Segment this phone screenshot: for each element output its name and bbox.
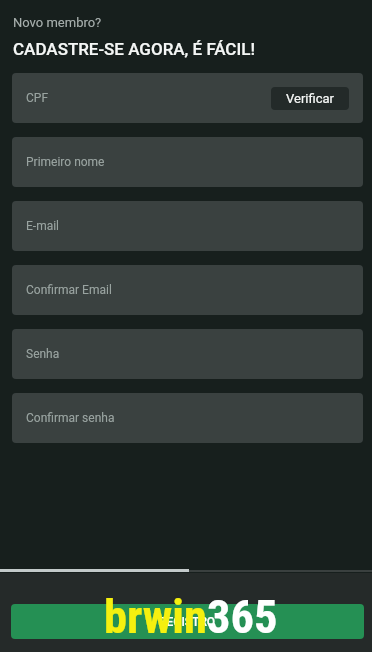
staticText: Verificar bbox=[286, 91, 334, 106]
button[interactable]: Verificar bbox=[271, 87, 349, 110]
other: brwin365 bbox=[104, 590, 278, 644]
staticText: CADASTRE-SE AGORA, É FÁCIL! bbox=[13, 39, 255, 59]
staticText: Confirmar Email bbox=[26, 283, 112, 297]
button[interactable]: Confirmar senha bbox=[12, 393, 363, 443]
staticText: brwin bbox=[104, 590, 207, 644]
staticText: Confirmar senha bbox=[26, 411, 115, 425]
staticText: CPF bbox=[26, 91, 49, 105]
staticText: Senha bbox=[26, 347, 60, 361]
button[interactable]: REGISTRO bbox=[11, 604, 364, 639]
staticText: 365 bbox=[207, 590, 278, 644]
staticText: Novo membro? bbox=[13, 15, 102, 30]
button[interactable]: Primeiro nome bbox=[12, 137, 363, 187]
button[interactable]: CPF bbox=[12, 73, 363, 123]
staticText: Primeiro nome bbox=[26, 155, 105, 169]
button[interactable]: Senha bbox=[12, 329, 363, 379]
button[interactable]: Confirmar Email bbox=[12, 265, 363, 315]
staticText: E-mail bbox=[26, 219, 60, 233]
button[interactable]: E-mail bbox=[12, 201, 363, 251]
staticText: REGISTRO bbox=[159, 615, 216, 629]
